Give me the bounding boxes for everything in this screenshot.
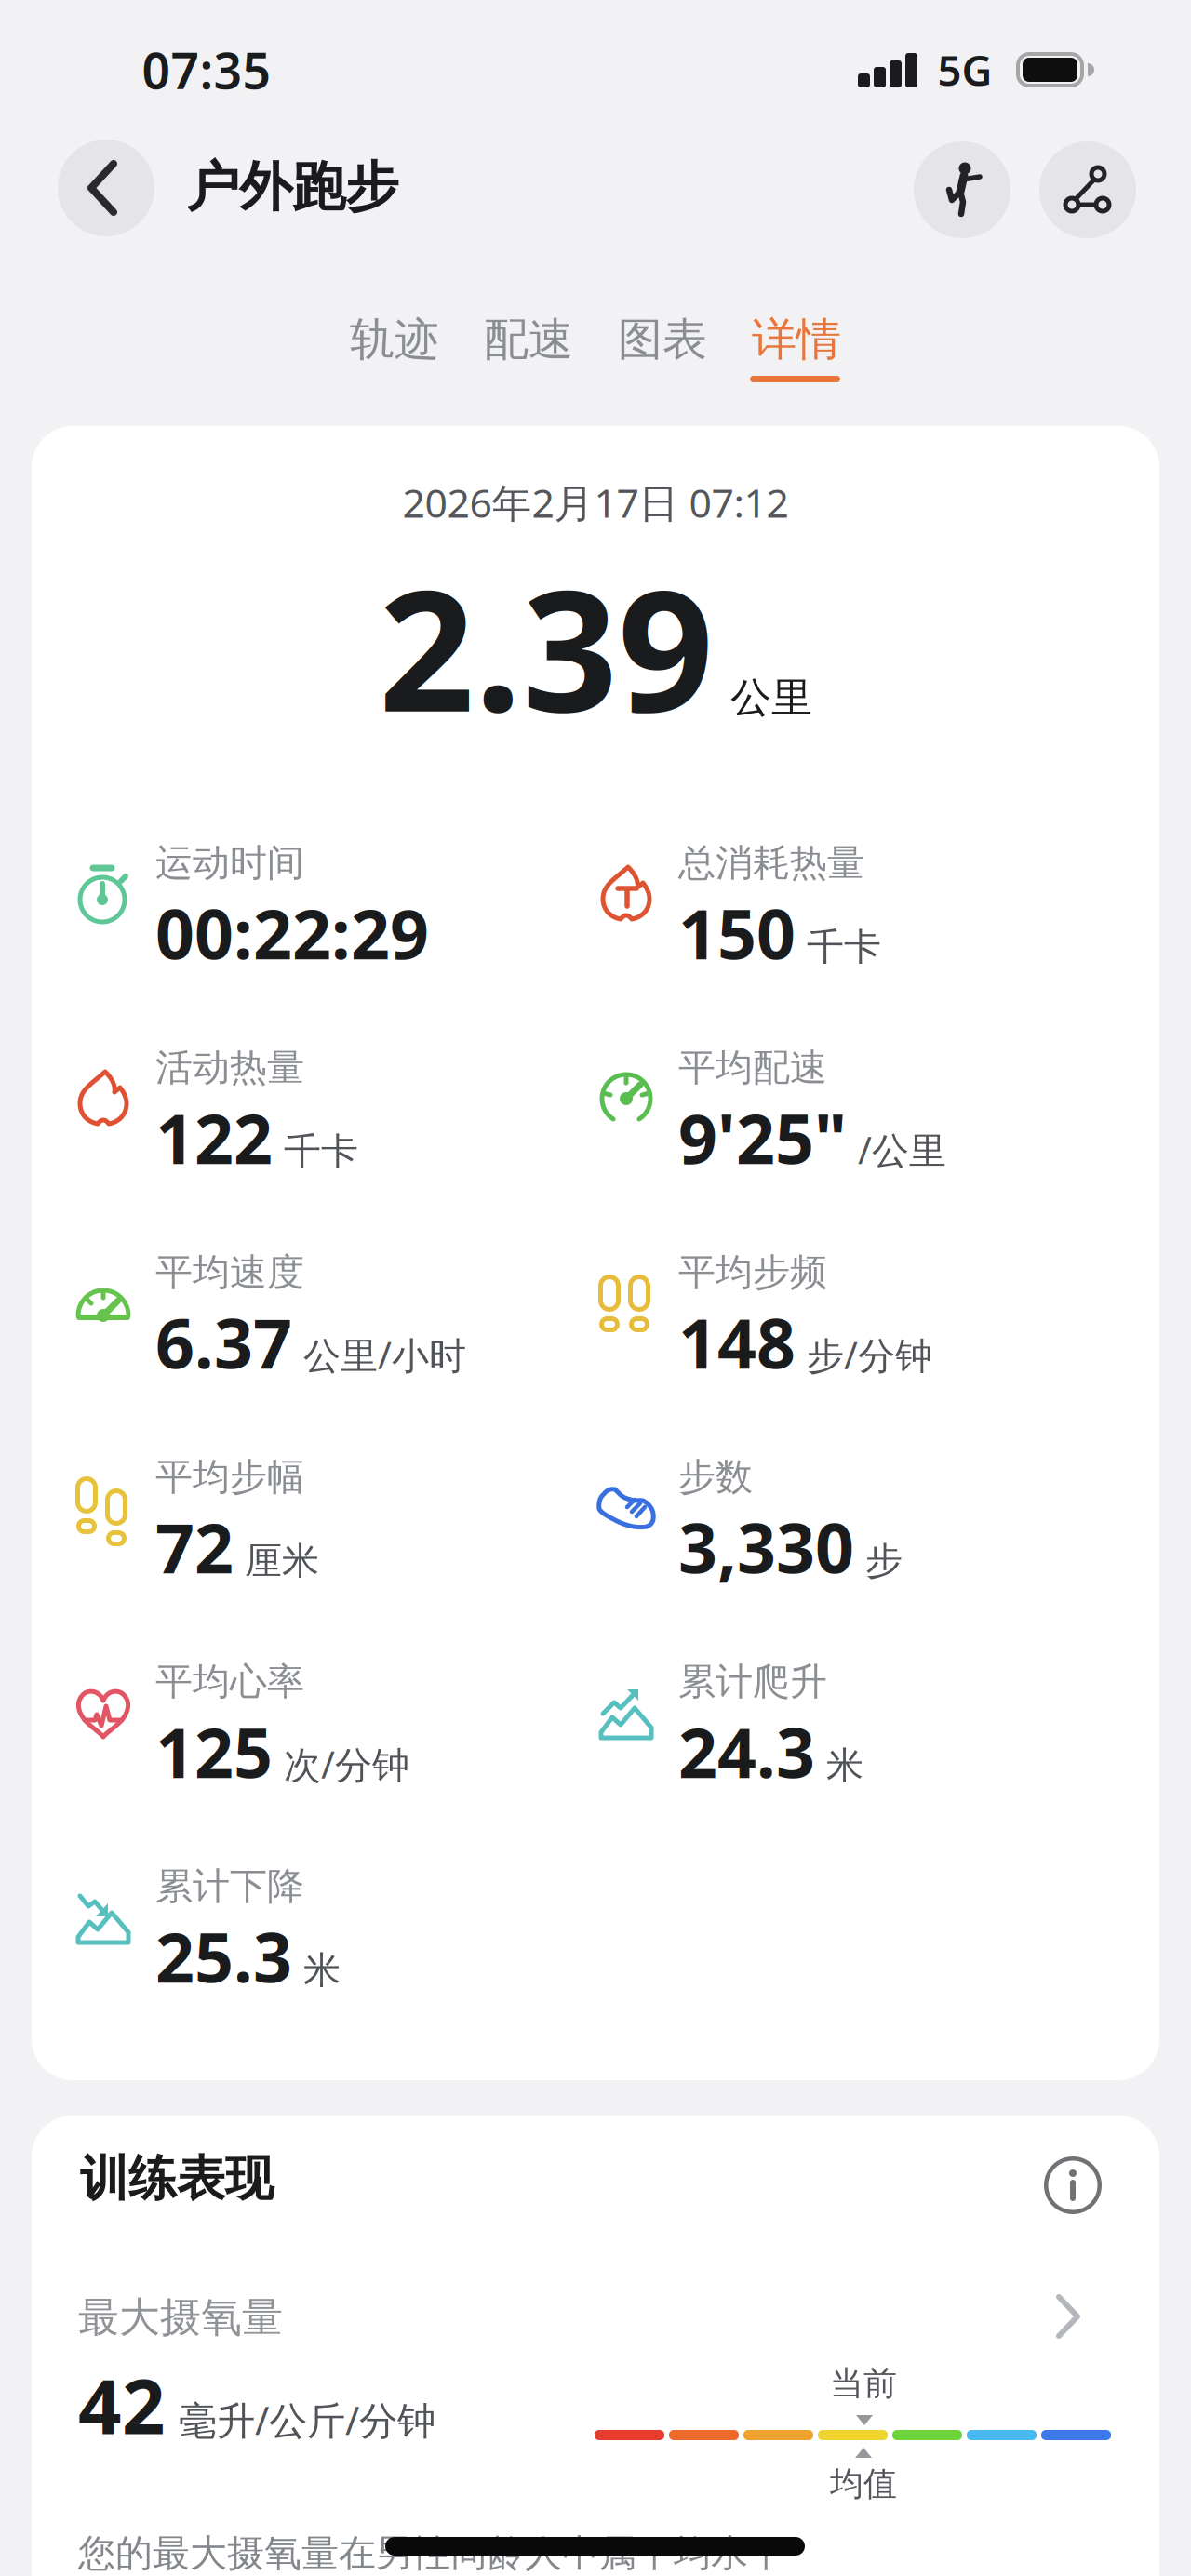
- staticText: 最大摄氧量: [78, 2292, 283, 2342]
- staticText: 厘米: [245, 1538, 319, 1584]
- staticText: 总消耗热量: [678, 840, 864, 886]
- staticText: 公里/小时: [303, 1330, 466, 1380]
- staticText: 公里: [730, 673, 812, 723]
- staticText: 千卡: [284, 1129, 358, 1175]
- staticText: 150: [678, 888, 796, 978]
- button[interactable]: 轨迹: [350, 312, 439, 367]
- staticText: 次/分钟: [284, 1739, 409, 1789]
- staticText: 毫升/公斤/分钟: [179, 2394, 435, 2445]
- staticText: 累计下降: [155, 1863, 304, 1909]
- staticText: 平均心率: [155, 1659, 304, 1704]
- staticText: 活动热量: [155, 1045, 304, 1090]
- staticText: 配速: [484, 312, 573, 367]
- staticText: 米: [303, 1947, 341, 1993]
- staticText: 您的最大摄氧量在男性同龄人中属平均水平: [78, 2530, 785, 2576]
- staticText: 3,330: [678, 1502, 854, 1592]
- button[interactable]: Route: [1039, 141, 1136, 238]
- staticText: 步: [865, 1538, 903, 1584]
- staticText: /公里: [858, 1125, 946, 1174]
- staticText: 5G: [937, 42, 992, 98]
- staticText: 详情: [752, 312, 841, 367]
- staticText: 均值: [830, 2463, 897, 2505]
- staticText: 122: [155, 1092, 273, 1183]
- button[interactable]: Back: [58, 140, 154, 236]
- staticText: 平均步频: [678, 1249, 827, 1295]
- staticText: 25.3: [155, 1911, 292, 2002]
- staticText: 户外跑步: [186, 154, 398, 220]
- button[interactable]: Info: [1044, 2156, 1102, 2214]
- staticText: 训练表现: [80, 2149, 274, 2208]
- staticText: 148: [678, 1297, 796, 1388]
- staticText: 当前: [830, 2363, 897, 2404]
- staticText: 平均配速: [678, 1045, 827, 1090]
- staticText: 2.39: [379, 535, 714, 758]
- staticText: 千卡: [807, 924, 881, 970]
- button[interactable]: 图表: [618, 312, 707, 367]
- button[interactable]: 详情: [752, 312, 841, 367]
- staticText: 运动时间: [155, 840, 304, 886]
- staticText: 42: [78, 2355, 166, 2455]
- button[interactable]: 配速: [484, 312, 573, 367]
- staticText: 2026年2月17日 07:12: [402, 476, 789, 529]
- staticText: 步数: [678, 1454, 753, 1500]
- staticText: 07:35: [142, 37, 271, 103]
- staticText: 平均步幅: [155, 1454, 304, 1500]
- staticText: 累计爬升: [678, 1659, 827, 1704]
- button[interactable]: 最大摄氧量: [78, 2292, 1098, 2344]
- button[interactable]: Stretch: [914, 141, 1010, 238]
- staticText: 步/分钟: [807, 1330, 932, 1380]
- staticText: 72: [155, 1502, 234, 1592]
- staticText: 图表: [618, 312, 707, 367]
- staticText: 9'25": [678, 1092, 847, 1183]
- staticText: 00:22:29: [155, 888, 429, 978]
- staticText: 6.37: [155, 1297, 292, 1388]
- staticText: 米: [826, 1743, 863, 1789]
- staticText: 平均速度: [155, 1249, 304, 1295]
- staticText: 125: [155, 1706, 273, 1797]
- staticText: 轨迹: [350, 312, 439, 367]
- staticText: 24.3: [678, 1706, 815, 1797]
